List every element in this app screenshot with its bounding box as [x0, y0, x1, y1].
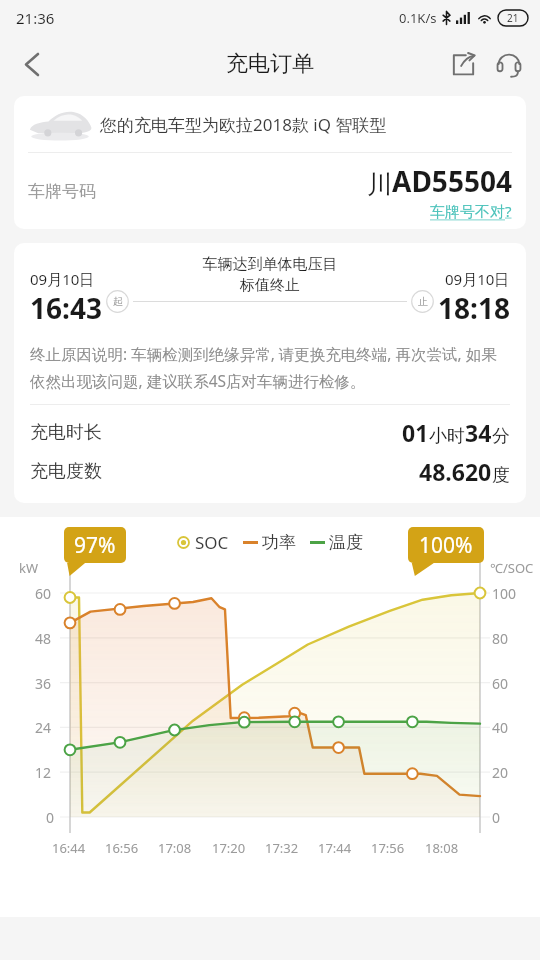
staticText: 车牌号不对?	[430, 201, 512, 221]
button[interactable]: Customer service	[486, 41, 532, 87]
staticText: 您的充电车型为欧拉2018款 iQ 智联型	[100, 113, 387, 136]
staticText: 01	[402, 417, 429, 448]
staticText: 34	[465, 417, 492, 448]
staticText: 24	[35, 718, 52, 737]
staticText: ℃/SOC	[490, 559, 534, 577]
staticText: 17:08	[158, 839, 192, 857]
staticText: kW	[19, 559, 39, 577]
staticText: 97%	[74, 531, 116, 560]
staticText: SOC	[195, 531, 229, 554]
staticText: 100%	[419, 531, 473, 560]
staticText: 36	[35, 674, 52, 693]
staticText: 20	[492, 763, 509, 782]
staticText: 终止原因说明: 车辆检测到绝缘异常, 请更换充电终端, 再次尝试, 如果依然出现…	[30, 343, 510, 392]
button[interactable]: 车牌号不对?	[430, 201, 512, 221]
staticText: 17:44	[318, 839, 352, 857]
staticText: 分	[492, 425, 510, 448]
staticText: 充电度数	[30, 460, 102, 483]
staticText: 起	[113, 295, 123, 308]
staticText: 18:08	[425, 839, 459, 857]
staticText: AD55504	[392, 162, 512, 200]
staticText: 0	[46, 808, 55, 827]
staticText: 16:44	[52, 839, 86, 857]
staticText: 09月10日	[445, 269, 510, 289]
staticText: 21:36	[16, 8, 55, 28]
staticText: 充电时长	[30, 421, 102, 444]
staticText: 40	[492, 718, 509, 737]
staticText: 车牌号码	[28, 181, 96, 202]
button[interactable]: Back	[8, 41, 54, 87]
staticText: 0	[492, 808, 501, 827]
staticText: 48.620	[419, 456, 492, 487]
staticText: 小时	[429, 425, 465, 448]
staticText: 12	[35, 763, 52, 782]
staticText: 止	[418, 295, 428, 308]
staticText: 17:32	[265, 839, 299, 857]
staticText: 功率	[262, 532, 296, 553]
staticText: 18:18	[438, 289, 510, 327]
staticText: 60	[492, 674, 509, 693]
staticText: 17:56	[371, 839, 405, 857]
staticText: 充电订单	[226, 50, 314, 78]
staticText: 度	[492, 464, 510, 487]
staticText: 60	[35, 584, 52, 603]
staticText: 车辆达到单体电压目 标值终止	[155, 255, 385, 294]
staticText: 48	[35, 629, 52, 648]
staticText: 100	[492, 584, 517, 603]
staticText: 温度	[329, 532, 363, 553]
button[interactable]: Share	[440, 41, 486, 87]
button[interactable]: 您的充电车型为欧拉2018款 iQ 智联型	[14, 96, 526, 229]
staticText: 16:43	[30, 289, 102, 327]
staticText: 0.1K/s	[399, 9, 437, 27]
staticText: 16:56	[105, 839, 139, 857]
staticText: 09月10日	[30, 269, 95, 289]
staticText: 川	[367, 169, 392, 200]
staticText: 17:20	[212, 839, 246, 857]
staticText: 80	[492, 629, 509, 648]
staticText: 21	[507, 11, 519, 25]
